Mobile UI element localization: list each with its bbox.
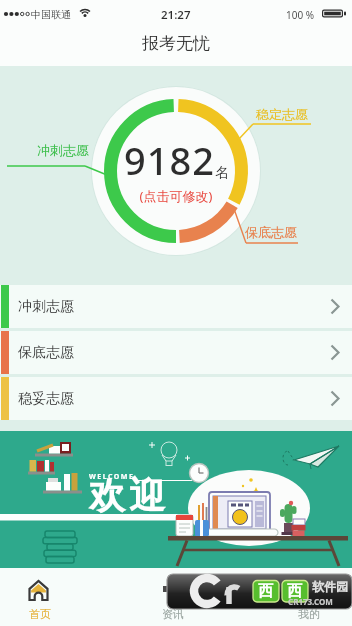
staticText: CR173.COM: [288, 596, 333, 607]
staticText: 我的: [298, 607, 320, 621]
staticText: 保底志愿: [18, 344, 74, 362]
staticText: 稳定志愿: [256, 106, 308, 122]
staticText: 西: [287, 582, 302, 601]
button[interactable]: [234, 568, 351, 626]
staticText: 冲刺志愿: [37, 142, 89, 158]
button[interactable]: WELCOME: [0, 431, 352, 568]
button[interactable]: 保底志愿: [0, 331, 352, 374]
staticText: 100 %: [286, 8, 315, 22]
staticText: 冲刺志愿: [18, 298, 74, 316]
staticText: 资讯: [162, 607, 184, 621]
button[interactable]: [0, 568, 117, 626]
staticText: 9182: [124, 134, 215, 186]
staticText: 西: [258, 582, 273, 601]
staticText: 名: [215, 164, 229, 182]
staticText: WELCOME: [89, 472, 135, 482]
staticText: 21:27: [161, 7, 191, 23]
staticText: (点击可修改): [0, 187, 352, 205]
staticText: 首页: [29, 607, 51, 621]
staticText: 稳妥志愿: [18, 390, 74, 408]
staticText: 软件园: [312, 579, 348, 594]
button[interactable]: 稳妥志愿: [0, 377, 352, 420]
staticText: 报考无忧: [142, 33, 210, 54]
button[interactable]: [117, 568, 234, 626]
staticText: 保底志愿: [245, 224, 297, 240]
staticText: 中国联通: [31, 8, 71, 21]
staticText: 欢迎: [87, 473, 167, 518]
button[interactable]: 冲刺志愿: [0, 285, 352, 328]
button[interactable]: 9182: [0, 134, 352, 186]
